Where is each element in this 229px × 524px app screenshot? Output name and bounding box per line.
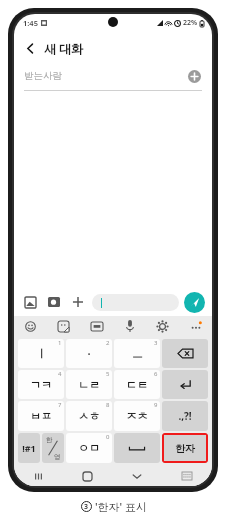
button[interactable]: ㅈㅊ bbox=[114, 401, 160, 431]
staticText: '한자' 표시 bbox=[95, 499, 148, 514]
button[interactable]: .,?! bbox=[162, 401, 208, 431]
button[interactable]: Camera bbox=[45, 293, 63, 311]
button[interactable]: Space bbox=[114, 433, 160, 463]
button[interactable]: Gallery bbox=[21, 293, 39, 311]
button[interactable]: !#1 bbox=[18, 433, 40, 463]
staticText: ㄴㄹ bbox=[78, 378, 100, 392]
button[interactable]: ㅣ bbox=[18, 339, 64, 368]
button[interactable]: ㅂㅍ bbox=[18, 401, 64, 431]
button[interactable]: 한 bbox=[42, 433, 64, 463]
staticText: 영 bbox=[54, 453, 61, 461]
button[interactable]: Emoji bbox=[14, 316, 47, 336]
button[interactable]: Recents bbox=[14, 466, 63, 486]
staticText: 받는사람 bbox=[24, 70, 62, 82]
button[interactable]: ㅅㅎ bbox=[66, 401, 112, 431]
button[interactable]: Settings bbox=[146, 316, 179, 336]
staticText: 3 bbox=[154, 339, 158, 347]
staticText: ㅂㅍ bbox=[30, 409, 52, 423]
staticText: ㅣ bbox=[36, 347, 47, 361]
staticText: 2 bbox=[106, 339, 110, 347]
button[interactable]: Add recipient bbox=[186, 68, 202, 84]
staticText: 1:45 bbox=[23, 18, 38, 28]
staticText: .,?! bbox=[178, 409, 192, 423]
staticText: 6 bbox=[154, 370, 158, 378]
button[interactable]: Hide keyboard bbox=[112, 466, 162, 486]
button[interactable]: Home bbox=[63, 466, 112, 486]
staticText: · bbox=[87, 346, 91, 361]
staticText: 7 bbox=[58, 401, 62, 409]
staticText: 새 대화 bbox=[44, 40, 84, 56]
staticText: 9 bbox=[154, 401, 158, 409]
button[interactable]: ㅡ bbox=[114, 339, 160, 368]
button[interactable]: More options bbox=[69, 293, 87, 311]
staticText: !#1 bbox=[22, 442, 36, 454]
button[interactable]: Change keyboard bbox=[162, 466, 212, 486]
button[interactable]: ㅇㅁ bbox=[66, 433, 112, 463]
button[interactable]: Stickers bbox=[47, 316, 80, 336]
staticText: 한자 bbox=[175, 442, 195, 455]
staticText: 4 bbox=[58, 370, 62, 378]
staticText: ㅇㅁ bbox=[78, 441, 100, 455]
staticText: ㄷㅌ bbox=[126, 378, 148, 392]
button[interactable]: ㄱㅋ bbox=[18, 370, 64, 399]
staticText: 한 bbox=[46, 436, 53, 444]
staticText: ㅡ bbox=[132, 347, 143, 361]
button[interactable]: Back bbox=[20, 38, 40, 58]
button[interactable]: Voice input bbox=[113, 316, 146, 336]
staticText: 5 bbox=[106, 370, 110, 378]
button[interactable]: Send bbox=[184, 292, 205, 313]
button[interactable]: Delete bbox=[162, 339, 208, 368]
button[interactable]: ㄷㅌ bbox=[114, 370, 160, 399]
button[interactable]: · bbox=[66, 339, 112, 368]
button[interactable]: More bbox=[179, 316, 212, 336]
staticText: 0 bbox=[106, 433, 110, 441]
staticText: 1 bbox=[58, 339, 62, 347]
button[interactable]: ㄴㄹ bbox=[66, 370, 112, 399]
staticText: ㅅㅎ bbox=[78, 409, 100, 423]
staticText: 8 bbox=[106, 401, 110, 409]
staticText: ㄱㅋ bbox=[30, 378, 52, 392]
button[interactable]: GIF bbox=[80, 316, 113, 336]
button[interactable]: Enter bbox=[162, 370, 208, 399]
button[interactable] bbox=[92, 294, 179, 311]
staticText: 3 bbox=[84, 502, 89, 512]
staticText: ㅈㅊ bbox=[126, 409, 148, 423]
staticText: 22% bbox=[183, 18, 198, 28]
button[interactable]: 한자 bbox=[162, 433, 208, 463]
